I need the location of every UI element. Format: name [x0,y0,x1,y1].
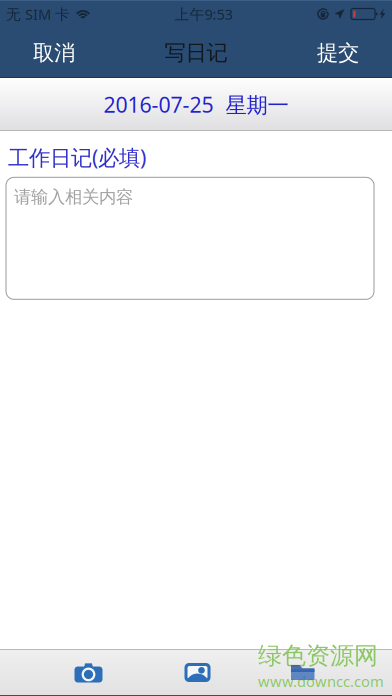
staticText: 取消 [33,40,75,66]
staticText: 写日记 [164,40,227,66]
staticText: 2016-07-25 星期一 [103,90,288,119]
staticText: 绿色资源网 [258,641,378,670]
staticText: 上午9:53 [174,4,232,24]
staticText: 请输入相关内容 [14,186,133,208]
staticText: 无 SIM 卡 [6,4,70,24]
button[interactable]: Take photo [34,649,143,696]
button[interactable]: 提交 [303,28,373,78]
staticText: 提交 [317,40,359,66]
button[interactable]: 取消 [19,28,89,78]
staticText: 工作日记(必填) [8,143,146,171]
button[interactable]: Choose photo [143,649,252,696]
staticText: www.downcc.com [258,671,384,691]
